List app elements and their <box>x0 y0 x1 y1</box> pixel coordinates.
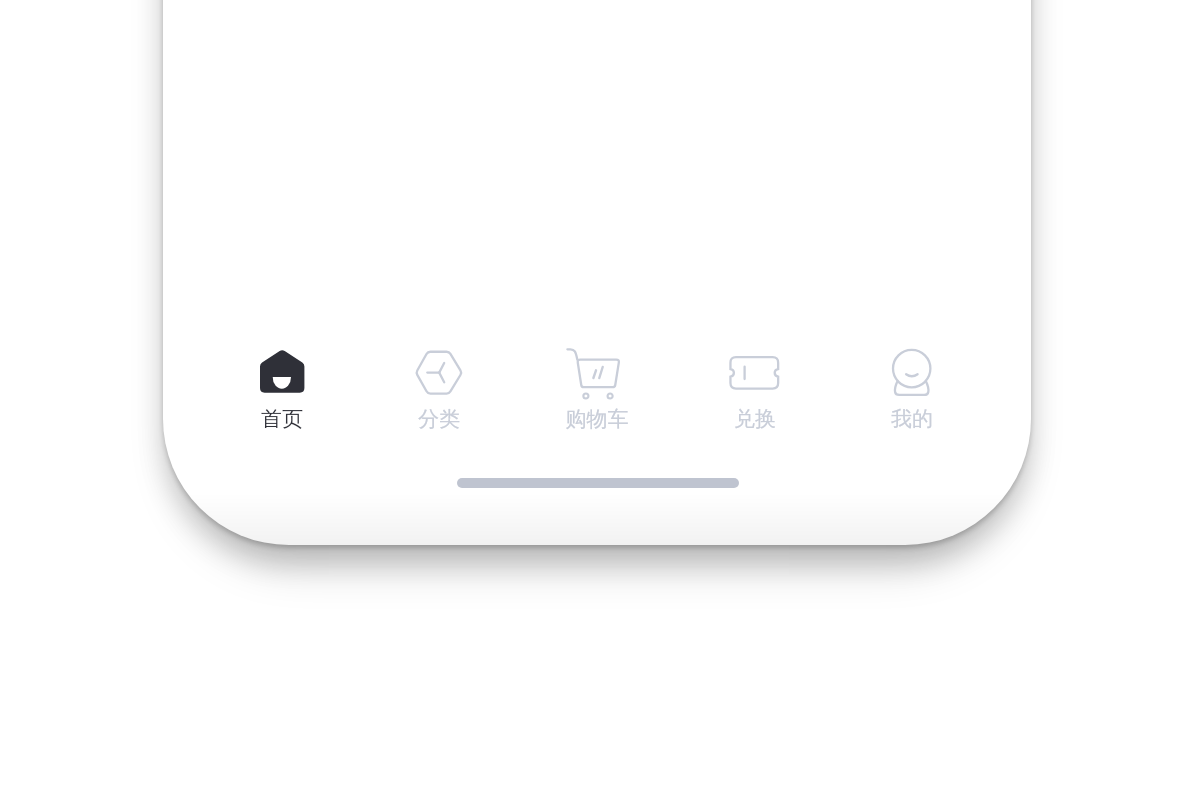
button[interactable]: Home <box>218 340 346 432</box>
button[interactable]: Profile <box>848 340 976 432</box>
button[interactable]: Redeem <box>691 340 819 432</box>
button[interactable]: Categories <box>375 340 503 432</box>
staticText: 首页 <box>218 406 346 432</box>
button[interactable]: Shopping cart <box>533 340 661 432</box>
staticText: 分类 <box>375 406 503 432</box>
staticText: 我的 <box>848 406 976 432</box>
staticText: 购物车 <box>533 406 661 432</box>
staticText: 兑换 <box>691 406 819 432</box>
